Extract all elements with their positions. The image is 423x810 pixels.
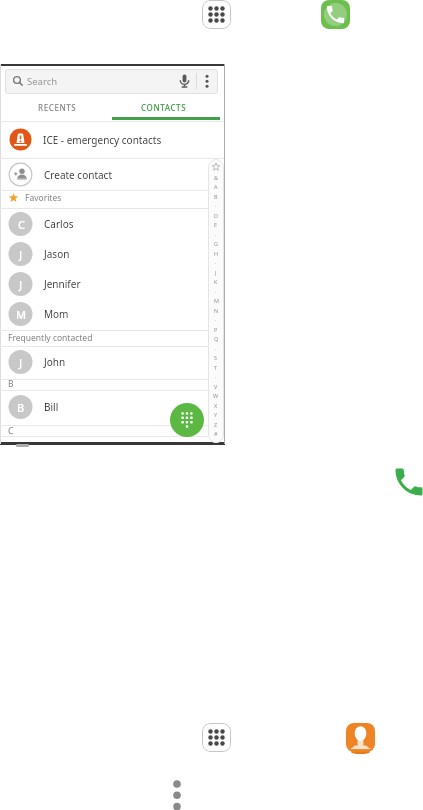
button[interactable]: M	[0, 299, 224, 329]
staticText: T	[214, 364, 218, 371]
staticText: Carlos	[44, 217, 74, 231]
button[interactable]	[202, 0, 231, 29]
staticText: J	[19, 247, 23, 262]
staticText: Bill	[44, 400, 59, 414]
staticText: B	[17, 400, 25, 415]
staticText: CONTACTS	[141, 102, 187, 113]
staticText: G	[214, 240, 219, 247]
button[interactable]: Create contact	[0, 158, 224, 190]
staticText: Q	[214, 335, 219, 342]
button[interactable]	[170, 403, 204, 437]
staticText: M	[214, 297, 219, 304]
staticText: N	[214, 307, 219, 314]
staticText: J	[19, 277, 23, 292]
staticText: ·	[215, 316, 217, 323]
staticText: J	[215, 269, 217, 276]
staticText: V	[214, 383, 218, 390]
staticText: ·	[215, 259, 217, 266]
staticText: Jason	[44, 247, 70, 261]
staticText: Create contact	[44, 168, 113, 182]
staticText: &	[214, 174, 219, 181]
staticText: E	[214, 221, 218, 228]
staticText: Frequently contacted	[8, 332, 93, 344]
button[interactable]: CONTACTS	[112, 93, 224, 121]
staticText: B	[214, 193, 218, 200]
staticText: John	[44, 355, 66, 369]
button[interactable]: C	[0, 209, 224, 239]
staticText: #	[214, 430, 218, 437]
staticText: Search	[27, 75, 58, 88]
staticText: Z	[214, 421, 218, 428]
staticText: K	[214, 278, 218, 285]
staticText: Mom	[44, 307, 69, 321]
button[interactable]	[208, 159, 224, 443]
button[interactable]: Search	[5, 69, 218, 94]
staticText: M	[16, 307, 27, 322]
button[interactable]	[166, 773, 188, 810]
staticText: ·	[215, 202, 217, 209]
staticText: ·	[215, 345, 217, 352]
staticText: Jennifer	[44, 277, 81, 291]
staticText: P	[214, 326, 218, 333]
staticText: H	[214, 250, 219, 257]
staticText: ICE - emergency contacts	[43, 133, 162, 147]
button[interactable]	[346, 723, 375, 752]
staticText: ·	[215, 373, 217, 380]
staticText: C	[8, 425, 14, 437]
staticText: Y	[214, 411, 218, 418]
staticText: ·	[215, 231, 217, 238]
button[interactable]	[202, 723, 231, 752]
staticText: S	[214, 354, 218, 361]
staticText: W	[213, 392, 219, 399]
staticText: RECENTS	[38, 102, 77, 113]
staticText: Favorites	[25, 192, 62, 204]
button[interactable]	[321, 0, 350, 29]
button[interactable]: J	[0, 347, 224, 377]
staticText: X	[214, 402, 218, 409]
button[interactable]: RECENTS	[0, 93, 112, 121]
staticText: J	[19, 355, 23, 370]
button[interactable]	[391, 464, 423, 500]
button[interactable]: ICE - emergency contacts	[0, 121, 224, 158]
staticText: C	[18, 217, 25, 232]
button[interactable]: J	[0, 239, 224, 269]
staticText: ·	[215, 288, 217, 295]
staticText: B	[8, 378, 14, 390]
button[interactable]: B	[0, 392, 224, 422]
staticText: A	[214, 183, 218, 190]
staticText: D	[214, 212, 219, 219]
button[interactable]: J	[0, 269, 224, 299]
